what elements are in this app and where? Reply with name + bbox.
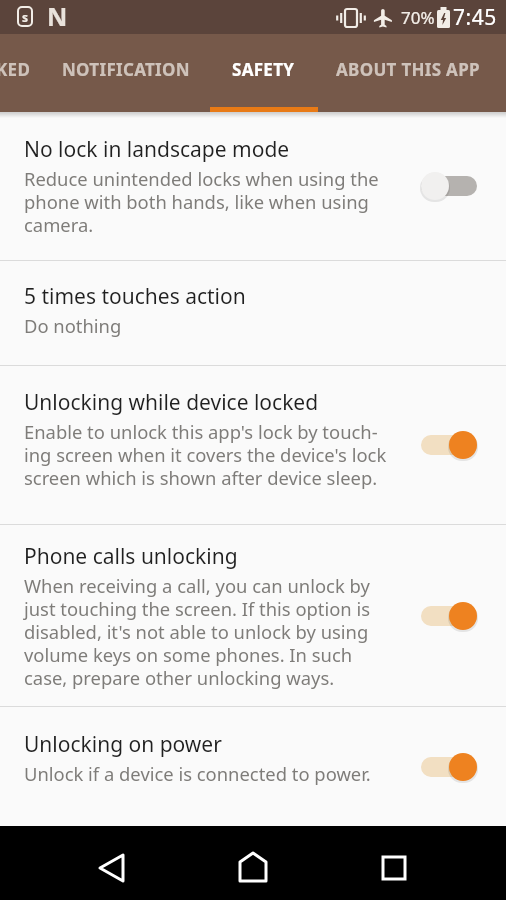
button[interactable]: SAFETY	[232, 58, 295, 81]
staticText: NOTIFICATION	[62, 58, 190, 81]
button[interactable]: Unlocking while device locked	[0, 366, 506, 524]
staticText: 5 times touches action	[24, 282, 246, 311]
button[interactable]: Unlocking on power	[0, 707, 506, 826]
staticText: ABOUT THIS APP	[336, 58, 480, 81]
staticText: Unlocking while device locked	[24, 388, 319, 417]
button[interactable]: Phone calls unlocking	[0, 525, 506, 706]
button[interactable]	[92, 848, 132, 888]
staticText: SAFETY	[232, 58, 295, 81]
button[interactable]	[421, 602, 477, 630]
button[interactable]: KED	[0, 58, 31, 81]
staticText: Phone calls unlocking	[24, 542, 238, 571]
staticText: Enable to unlock this app's lock by touc…	[24, 419, 387, 490]
button[interactable]	[421, 753, 477, 781]
button[interactable]	[374, 848, 414, 888]
button[interactable]	[233, 848, 273, 888]
button[interactable]: ABOUT THIS APP	[336, 58, 480, 81]
staticText: When receiving a call, you can unlock by…	[24, 573, 371, 690]
button[interactable]	[421, 431, 477, 459]
staticText: Unlock if a device is connected to power…	[24, 761, 371, 786]
button[interactable]	[421, 172, 477, 200]
button[interactable]: No lock in landscape mode	[0, 112, 506, 260]
staticText: Unlocking on power	[24, 730, 222, 759]
staticText: Do nothing	[24, 313, 122, 338]
staticText: N	[47, 0, 68, 33]
staticText: No lock in landscape mode	[24, 135, 290, 164]
staticText: s	[22, 9, 29, 25]
staticText: 7:45	[453, 3, 497, 32]
button[interactable]: NOTIFICATION	[62, 58, 190, 81]
staticText: 70%	[401, 6, 435, 29]
staticText: KED	[0, 58, 31, 81]
staticText: Reduce unintended locks when using the p…	[24, 166, 379, 237]
button[interactable]: 5 times touches action	[0, 261, 506, 365]
